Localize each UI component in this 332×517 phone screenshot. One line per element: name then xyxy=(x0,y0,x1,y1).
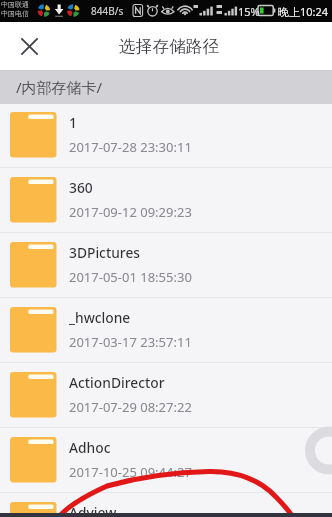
staticText: 2017-10-25 09:44:27 xyxy=(69,463,192,481)
staticText: 选择存储路径 xyxy=(119,36,220,57)
staticText: 360 xyxy=(69,178,93,197)
staticText: 844B/s xyxy=(91,4,124,18)
button[interactable]: Adview xyxy=(0,493,332,517)
staticText: 2017-07-28 23:30:11 xyxy=(69,138,192,156)
staticText: 晚上10:24 xyxy=(278,4,329,19)
button[interactable]: /内部存储卡/ xyxy=(0,70,332,104)
staticText: 2017-05-01 18:55:30 xyxy=(69,268,192,286)
staticText: 2017-03-17 23:57:11 xyxy=(69,333,192,351)
staticText: 中国联通 xyxy=(1,0,29,9)
staticText: _hwclone xyxy=(69,308,131,327)
staticText: Adview xyxy=(69,503,117,517)
staticText: 2017-07-29 08:27:22 xyxy=(69,398,192,416)
button[interactable]: _hwclone xyxy=(0,298,332,363)
staticText: 1 xyxy=(69,113,77,132)
staticText: Adhoc xyxy=(69,438,111,457)
button[interactable]: 1 xyxy=(0,103,332,168)
button[interactable]: 3DPictures xyxy=(0,233,332,298)
button[interactable]: ActionDirector xyxy=(0,363,332,428)
staticText: 中国电信 xyxy=(1,9,29,18)
button[interactable]: 360 xyxy=(0,168,332,233)
staticText: 2017-09-12 09:29:23 xyxy=(69,203,192,221)
button[interactable]: Adhoc xyxy=(0,428,332,493)
staticText: ActionDirector xyxy=(69,373,165,392)
staticText: 3DPictures xyxy=(69,243,141,262)
button[interactable]: Close xyxy=(13,30,46,63)
staticText: 15% xyxy=(238,4,260,19)
staticText: /内部存储卡/ xyxy=(16,77,103,97)
